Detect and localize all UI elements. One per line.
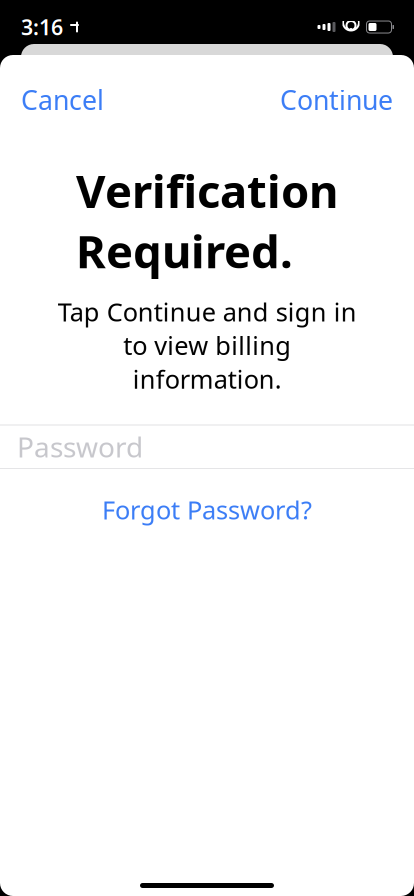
staticText: Password — [17, 428, 143, 465]
staticText: Verification Required. — [76, 160, 338, 281]
staticText: 3:16 — [21, 13, 63, 41]
staticText: Forgot Password? — [102, 493, 312, 526]
button[interactable]: Cancel — [0, 71, 125, 128]
button[interactable]: Continue — [259, 71, 414, 128]
staticText: Cancel — [21, 82, 104, 117]
button[interactable]: Forgot Password? — [86, 483, 328, 536]
staticText: Continue — [280, 82, 393, 117]
staticText: Tap Continue and sign in to view billing… — [57, 295, 356, 396]
